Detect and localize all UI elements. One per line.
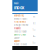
staticText: Ticket closed	[14, 43, 27, 46]
staticText: Weekly report	[14, 18, 28, 20]
button[interactable]: Support	[12, 40, 38, 46]
staticText: Tue	[32, 29, 35, 31]
staticText: Sun	[32, 42, 35, 44]
button[interactable]: Marketing	[12, 14, 38, 20]
staticText: Inbox	[14, 5, 24, 10]
staticText: Invoice ready	[14, 30, 27, 33]
staticText: Mail	[14, 2, 19, 5]
staticText: Jamie Chen	[14, 33, 26, 36]
staticText: Marketing	[14, 14, 24, 17]
staticText: 8:12	[32, 23, 35, 24]
staticText: Design review	[14, 24, 29, 27]
button[interactable]: Alex Rivera	[12, 20, 38, 27]
staticText: Alex Rivera	[14, 21, 26, 23]
staticText: Lunch?	[14, 37, 20, 39]
staticText: 9:41	[32, 16, 35, 18]
staticText: Support	[14, 40, 21, 42]
staticText: Mon	[32, 35, 35, 37]
button[interactable]: Finance	[12, 27, 38, 33]
button[interactable]: Jamie Chen	[12, 33, 38, 40]
staticText: Finance	[14, 27, 21, 30]
